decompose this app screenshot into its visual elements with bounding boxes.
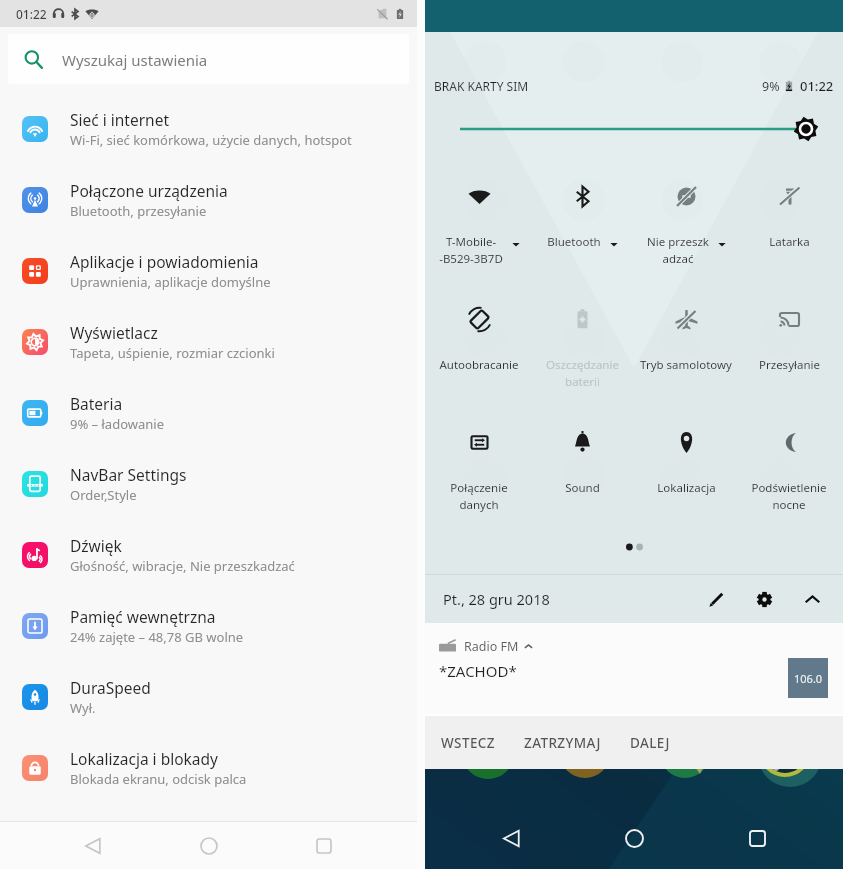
button[interactable]: Podświetlenie nocne — [739, 430, 839, 512]
staticText: Dźwięk — [70, 535, 122, 556]
button[interactable]: DALEJ — [622, 723, 678, 763]
staticText: Głośność, wibracje, Nie przeszkadzać — [70, 557, 295, 575]
button[interactable]: Aplikacje i powiadomienia — [0, 235, 417, 306]
staticText: 9% — [762, 78, 780, 95]
button[interactable]: WSTECZ — [433, 723, 503, 763]
staticText: Autoobracanie — [439, 357, 519, 373]
button[interactable]: Sound — [532, 430, 632, 496]
button[interactable]: T-Mobile- -B529-3B7D — [429, 184, 529, 266]
staticText: Lokalizacja i blokady — [70, 748, 218, 769]
staticText: Wi-Fi, sieć komórkowa, użycie danych, ho… — [70, 131, 352, 149]
staticText: 01:22 — [800, 77, 834, 95]
staticText: Order,Style — [70, 486, 137, 504]
staticText: Lokalizacja — [657, 480, 716, 496]
staticText: Blokada ekranu, odcisk palca — [70, 770, 247, 788]
button[interactable]: Lokalizacja i blokady — [0, 732, 417, 803]
button[interactable]: Autoobracanie — [429, 307, 529, 373]
staticText: ZATRZYMAJ — [524, 734, 601, 752]
staticText: *ZACHOD* — [439, 661, 517, 681]
button[interactable]: Recents — [733, 814, 781, 862]
button[interactable]: Wyświetlacz — [0, 306, 417, 377]
staticText: Tryb samolotowy — [640, 357, 732, 373]
staticText: Tapeta, uśpienie, rozmiar czcionki — [70, 344, 275, 362]
staticText: Wył. — [70, 699, 96, 717]
button[interactable]: Oszczędzanie baterii — [532, 307, 632, 389]
button[interactable]: Pamięć wewnętrzna — [0, 590, 417, 661]
button[interactable]: ZATRZYMAJ — [516, 723, 609, 763]
button[interactable]: Collapse — [795, 582, 829, 616]
staticText: T-Mobile- -B529-3B7D — [439, 234, 503, 266]
staticText: Bluetooth, przesyłanie — [70, 202, 207, 220]
staticText: Sieć i internet — [70, 109, 169, 130]
staticText: Pt., 28 gru 2018 — [443, 589, 550, 609]
button[interactable]: Dźwięk — [0, 519, 417, 590]
button[interactable]: Sieć i internet — [0, 93, 417, 164]
staticText: 24% zajęte – 48,78 GB wolne — [70, 628, 244, 646]
button[interactable]: Latarka — [739, 184, 839, 250]
button[interactable]: Home — [185, 822, 233, 869]
staticText: 9% – ładowanie — [70, 415, 164, 433]
button[interactable]: Połączone urządzenia — [0, 164, 417, 235]
staticText: Połączenie danych — [450, 480, 508, 512]
staticText: 106.0 — [794, 671, 823, 686]
staticText: Oszczędzanie baterii — [546, 357, 619, 389]
staticText: 01:22 — [16, 6, 47, 22]
staticText: Uprawnienia, aplikacje domyślne — [70, 273, 271, 291]
staticText: Podświetlenie nocne — [751, 480, 827, 512]
button[interactable]: Home — [610, 814, 658, 862]
button[interactable]: Lokalizacja — [636, 430, 736, 496]
button[interactable]: DuraSpeed — [0, 661, 417, 732]
staticText: Bateria — [70, 393, 123, 414]
button[interactable]: Settings — [747, 582, 781, 616]
button[interactable]: Nie przeszk adzać — [636, 184, 736, 266]
staticText: Radio FM — [464, 638, 519, 655]
staticText: Latarka — [769, 234, 810, 250]
button[interactable]: Brightness — [425, 115, 843, 143]
button[interactable]: Edit — [699, 582, 733, 616]
staticText: Pamięć wewnętrzna — [70, 606, 216, 627]
staticText: Przesyłanie — [759, 357, 820, 373]
button[interactable]: Przesyłanie — [739, 307, 839, 373]
staticText: BRAK KARTY SIM — [434, 78, 529, 94]
button[interactable]: Połączenie danych — [429, 430, 529, 512]
staticText: NavBar Settings — [70, 464, 187, 485]
staticText: Wyświetlacz — [70, 322, 158, 343]
button[interactable]: Wyszukaj ustawienia — [8, 34, 409, 84]
staticText: DALEJ — [630, 734, 670, 752]
staticText: WSTECZ — [441, 734, 495, 752]
button[interactable]: Back — [69, 822, 117, 869]
staticText: Wyszukaj ustawienia — [62, 50, 208, 70]
staticText: Nie przeszk adzać — [647, 234, 709, 266]
staticText: Połączone urządzenia — [70, 180, 228, 201]
staticText: Sound — [565, 480, 600, 496]
button[interactable]: Bluetooth — [532, 184, 632, 250]
button[interactable]: Recents — [300, 822, 348, 869]
staticText: Aplikacje i powiadomienia — [70, 251, 259, 272]
button[interactable]: Bateria — [0, 377, 417, 448]
button[interactable]: Tryb samolotowy — [636, 307, 736, 373]
staticText: DuraSpeed — [70, 677, 151, 698]
staticText: Bluetooth — [547, 234, 601, 250]
button[interactable]: NavBar Settings — [0, 448, 417, 519]
button[interactable]: Back — [487, 814, 535, 862]
